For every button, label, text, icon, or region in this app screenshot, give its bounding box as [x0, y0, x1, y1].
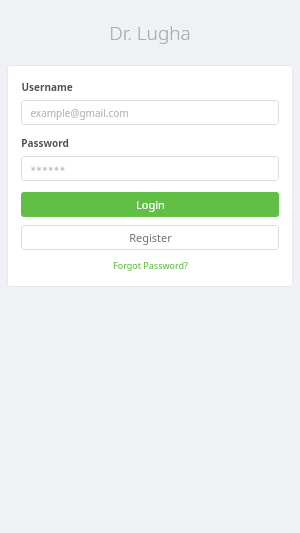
button[interactable]: Text input — [21, 100, 279, 125]
button[interactable]: Forgot Password? — [21, 257, 279, 273]
button[interactable]: Text input — [21, 156, 279, 181]
staticText: Login — [136, 197, 165, 212]
staticText: ∗∗∗∗∗∗ — [30, 165, 66, 173]
staticText: Register — [129, 230, 172, 245]
button[interactable]: Login — [21, 192, 279, 217]
staticText: Dr. Lugha — [109, 20, 191, 46]
staticText: Password — [21, 136, 69, 150]
staticText: Username — [21, 80, 73, 94]
staticText: Forgot Password? — [113, 259, 188, 271]
button[interactable]: Register — [21, 225, 279, 250]
staticText: example@gmail.com — [30, 106, 129, 120]
